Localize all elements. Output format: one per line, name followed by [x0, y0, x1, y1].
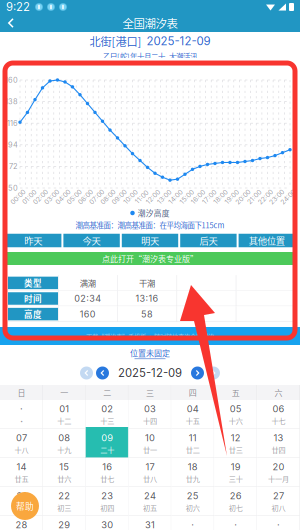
- button[interactable]: 其他位置: [239, 234, 295, 247]
- button[interactable]: 17: [129, 458, 171, 487]
- button[interactable]: 08: [43, 429, 86, 458]
- staticText: 乙巳[蛇]年十月二十 大潮活汛: [103, 51, 197, 62]
- staticText: 廿九: [186, 473, 200, 484]
- button[interactable]: 24: [129, 487, 171, 516]
- staticText: ·: [18, 415, 25, 426]
- staticText: 06:00: [76, 193, 94, 201]
- button[interactable]: 12: [214, 429, 257, 458]
- staticText: 点此打开“潮汐表专业版”: [102, 253, 198, 264]
- button[interactable]: 下个月: [207, 366, 220, 379]
- staticText: 16: [102, 461, 112, 472]
- button[interactable]: 后一天: [191, 366, 204, 379]
- button[interactable]: 13: [257, 429, 300, 458]
- staticText: 22:00: [256, 193, 274, 201]
- staticText: 时间: [24, 292, 42, 305]
- button[interactable]: ·: [171, 516, 214, 530]
- staticText: 六: [275, 387, 283, 398]
- button[interactable]: 14: [0, 458, 43, 487]
- staticText: 31: [145, 519, 155, 530]
- button[interactable]: 下载“潮汐表”手机版 · 随时随地查询全国潮汐: [0, 327, 300, 345]
- staticText: 廿四: [272, 444, 286, 455]
- staticText: 满潮: [80, 277, 96, 289]
- button[interactable]: 05: [214, 400, 257, 429]
- staticText: 30: [101, 519, 113, 530]
- button[interactable]: 09: [86, 429, 129, 458]
- button[interactable]: 07: [0, 429, 43, 458]
- staticText: 初四: [100, 502, 114, 513]
- staticText: 全国潮汐表: [122, 15, 177, 31]
- staticText: 18: [188, 461, 198, 472]
- button[interactable]: 20: [257, 458, 300, 487]
- button[interactable]: 明天: [122, 234, 178, 247]
- button[interactable]: 27: [257, 487, 300, 516]
- button[interactable]: 昨天: [5, 234, 61, 247]
- button[interactable]: ·: [0, 400, 43, 429]
- staticText: ·: [277, 519, 280, 530]
- staticText: 高度: [24, 308, 42, 320]
- staticText: 下载“潮汐表”手机版 · 随时随地查询全国潮汐: [86, 332, 214, 340]
- button[interactable]: 返回: [0, 14, 22, 32]
- staticText: 三: [146, 387, 154, 398]
- button[interactable]: 23: [86, 487, 129, 516]
- button[interactable]: 前一天: [96, 366, 109, 379]
- staticText: 13:16: [135, 293, 158, 304]
- staticText: 14:00: [167, 193, 184, 201]
- staticText: 29: [58, 519, 70, 530]
- staticText: 廿二: [186, 444, 200, 455]
- staticText: 19: [231, 461, 241, 472]
- staticText: 09:00: [110, 193, 128, 201]
- button[interactable]: 16: [86, 458, 129, 487]
- button[interactable]: 帮助: [11, 492, 39, 520]
- button[interactable]: ·: [257, 516, 300, 530]
- staticText: 十二: [57, 415, 71, 426]
- button[interactable]: 06: [257, 400, 300, 429]
- button[interactable]: 15: [43, 458, 86, 487]
- button[interactable]: 11: [171, 429, 214, 458]
- staticText: 十五: [186, 415, 200, 426]
- staticText: 10: [145, 432, 155, 443]
- staticText: 初七: [229, 502, 243, 513]
- staticText: 01: [59, 403, 69, 414]
- button[interactable]: 26: [214, 487, 257, 516]
- button[interactable]: 后天: [180, 234, 237, 247]
- staticText: 今天: [83, 234, 101, 247]
- button[interactable]: 31: [129, 516, 171, 530]
- staticText: 21: [16, 490, 26, 501]
- button[interactable]: 18: [171, 458, 214, 487]
- staticText: 10:00: [122, 193, 139, 201]
- button[interactable]: 28: [0, 516, 43, 530]
- staticText: 初五: [143, 502, 157, 513]
- button[interactable]: 29: [43, 516, 86, 530]
- staticText: 十六: [229, 415, 243, 426]
- staticText: 后天: [199, 234, 217, 247]
- button[interactable]: ·: [214, 516, 257, 530]
- staticText: 二十: [100, 444, 114, 455]
- button[interactable]: 19: [214, 458, 257, 487]
- button[interactable]: 01: [43, 400, 86, 429]
- staticText: 十一月: [268, 473, 289, 484]
- staticText: 11: [189, 432, 197, 443]
- button[interactable]: 21: [0, 487, 43, 516]
- button[interactable]: 25: [171, 487, 214, 516]
- staticText: 9:22: [6, 0, 30, 14]
- button[interactable]: 位置未固定: [0, 347, 300, 359]
- button[interactable]: 04: [171, 400, 214, 429]
- staticText: 十八: [14, 444, 28, 455]
- staticText: 17: [145, 461, 154, 472]
- button[interactable]: 30: [86, 516, 129, 530]
- button[interactable]: 今天: [63, 234, 120, 247]
- button[interactable]: 10: [129, 429, 171, 458]
- staticText: 05: [230, 403, 242, 414]
- staticText: 廿七: [100, 473, 114, 484]
- staticText: 二: [103, 387, 111, 398]
- staticText: 帮助: [16, 500, 34, 512]
- button[interactable]: 02: [86, 400, 129, 429]
- staticText: 初八: [272, 502, 286, 513]
- staticText: 初三: [57, 502, 71, 513]
- button[interactable]: 点此打开“潮汐表专业版”: [0, 252, 300, 265]
- button[interactable]: 03: [129, 400, 171, 429]
- staticText: 一: [60, 387, 68, 398]
- staticText: 干潮: [139, 277, 155, 289]
- button[interactable]: 22: [43, 487, 86, 516]
- button[interactable]: 上个月: [80, 366, 93, 379]
